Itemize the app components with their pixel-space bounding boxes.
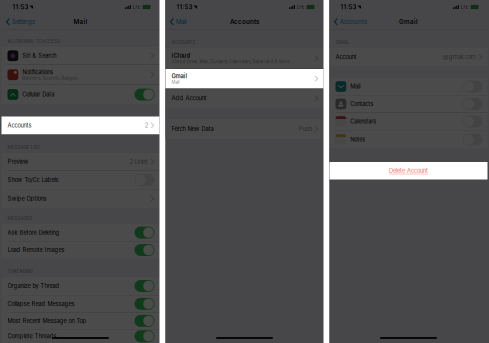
staticText: Accounts: [7, 122, 31, 129]
staticText: Notes: [350, 136, 365, 143]
staticText: Ask Before Deleting: [7, 229, 59, 236]
button[interactable]: Delete Account: [329, 162, 487, 179]
button[interactable]: Notes: [329, 130, 487, 148]
staticText: Accounts: [340, 18, 367, 25]
button[interactable]: Cellular Data: [1, 85, 159, 104]
button[interactable]: Gmail: [165, 69, 323, 88]
staticText: Account: [335, 53, 356, 60]
button[interactable]: Preview: [1, 153, 159, 171]
staticText: Show To/Cc Labels: [7, 176, 58, 183]
staticText: Mail: [73, 18, 87, 26]
staticText: Accounts: [230, 18, 259, 26]
button[interactable]: Mail: [165, 16, 190, 28]
button[interactable]: Collapse Read Messages: [1, 295, 159, 313]
button[interactable]: iCloud: [165, 48, 323, 69]
staticText: Mail: [171, 80, 179, 85]
staticText: Banners, Sounds, Badges: [22, 76, 77, 81]
staticText: Add Account: [171, 95, 206, 102]
button[interactable]: Ask Before Deleting: [1, 224, 159, 242]
staticText: 11:53: [176, 3, 192, 11]
button[interactable]: Swipe Options: [1, 189, 159, 208]
staticText: Contacts: [350, 100, 373, 107]
staticText: ◥: [192, 4, 196, 10]
staticText: Swipe Options: [7, 195, 46, 202]
staticText: GMAIL: [335, 39, 349, 45]
staticText: Organize by Thread: [7, 282, 59, 289]
staticText: 2 Lines: [130, 158, 148, 165]
staticText: MESSAGES: [7, 215, 32, 221]
staticText: 11:53: [12, 3, 28, 11]
staticText: Cellular Data: [22, 91, 54, 98]
staticText: ◥: [356, 4, 360, 10]
button[interactable]: Organize by Thread: [1, 277, 159, 295]
button[interactable]: Add Account: [165, 88, 323, 108]
staticText: Gmail: [399, 18, 418, 26]
button[interactable]: Accounts: [1, 116, 159, 134]
button[interactable]: Show To/Cc Labels: [1, 171, 159, 189]
button[interactable]: Siri & Search: [1, 47, 159, 65]
staticText: Settings: [12, 18, 35, 25]
staticText: MESSAGE LIST: [7, 144, 40, 150]
staticText: 2: [145, 122, 148, 129]
button[interactable]: Most Recent Message on Top: [1, 313, 159, 329]
button[interactable]: Notifications: [1, 65, 159, 85]
staticText: Most Recent Message on Top: [7, 317, 86, 324]
staticText: Complete Threads: [7, 333, 56, 340]
button[interactable]: Complete Threads: [1, 329, 159, 343]
staticText: @gmail.com: [443, 53, 476, 60]
staticText: LTE: [461, 4, 469, 10]
staticText: ACCOUNTS: [171, 39, 195, 45]
button[interactable]: Contacts: [329, 95, 487, 113]
staticText: Fetch New Data: [171, 125, 213, 132]
staticText: Siri & Search: [22, 52, 56, 59]
staticText: LTE: [133, 4, 141, 10]
button[interactable]: Mail: [329, 78, 487, 95]
button[interactable]: Load Remote Images: [1, 242, 159, 258]
staticText: ◥: [28, 4, 32, 10]
staticText: Calendars: [350, 118, 376, 125]
button[interactable]: Settings: [1, 16, 39, 28]
staticText: Notifications: [22, 69, 53, 75]
staticText: Preview: [7, 158, 28, 165]
button[interactable]: Calendars: [329, 113, 487, 130]
staticText: Mail: [350, 83, 360, 90]
staticText: Mail: [176, 18, 186, 25]
staticText: Load Remote Images: [7, 246, 64, 253]
staticText: Collapse Read Messages: [7, 300, 74, 307]
staticText: ALLOW MAIL TO ACCESS: [7, 38, 60, 44]
button[interactable]: Accounts: [329, 16, 371, 28]
button[interactable]: Fetch New Data: [165, 119, 323, 139]
staticText: iCloud: [171, 52, 190, 59]
staticText: Delete Account: [389, 167, 428, 174]
staticText: LTE: [297, 4, 305, 10]
button[interactable]: Account: [329, 48, 487, 66]
staticText: 11:53: [340, 3, 356, 11]
staticText: Gmail: [171, 73, 187, 79]
staticText: Push: [299, 125, 312, 132]
staticText: THREADING: [7, 268, 32, 274]
staticText: iCloud Drive, Mail, Contacts, Calendars,…: [171, 59, 294, 64]
